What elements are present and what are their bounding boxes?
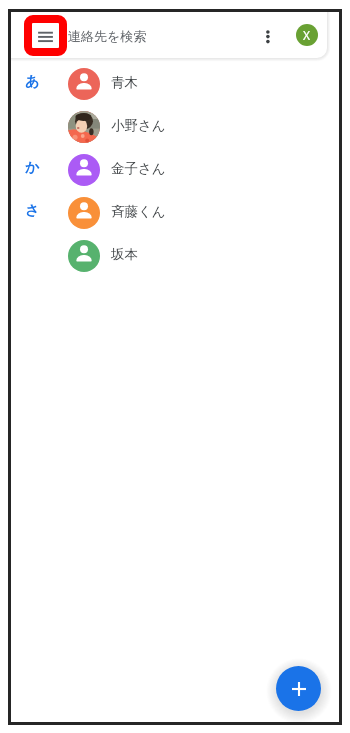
staticText: か: [25, 159, 40, 177]
button[interactable]: その他のオプション: [267, 18, 291, 52]
staticText: 金子さん: [111, 160, 166, 177]
staticText: あ: [25, 73, 40, 91]
staticText: 連絡先を検索: [68, 28, 147, 44]
staticText: X: [303, 27, 311, 43]
button[interactable]: か: [11, 148, 339, 191]
button[interactable]: 坂本: [11, 234, 339, 277]
button[interactable]: 小野さん: [11, 105, 339, 148]
staticText: さ: [25, 202, 40, 220]
staticText: 青木: [111, 74, 138, 91]
staticText: 小野さん: [111, 117, 166, 134]
staticText: 坂本: [111, 246, 138, 263]
button[interactable]: アカウント: [296, 24, 318, 46]
button[interactable]: さ: [11, 191, 339, 234]
staticText: 斉藤くん: [111, 203, 166, 220]
button[interactable]: 連絡先を追加: [276, 666, 321, 711]
button[interactable]: あ: [11, 62, 339, 105]
button[interactable]: メニュー: [24, 15, 67, 56]
